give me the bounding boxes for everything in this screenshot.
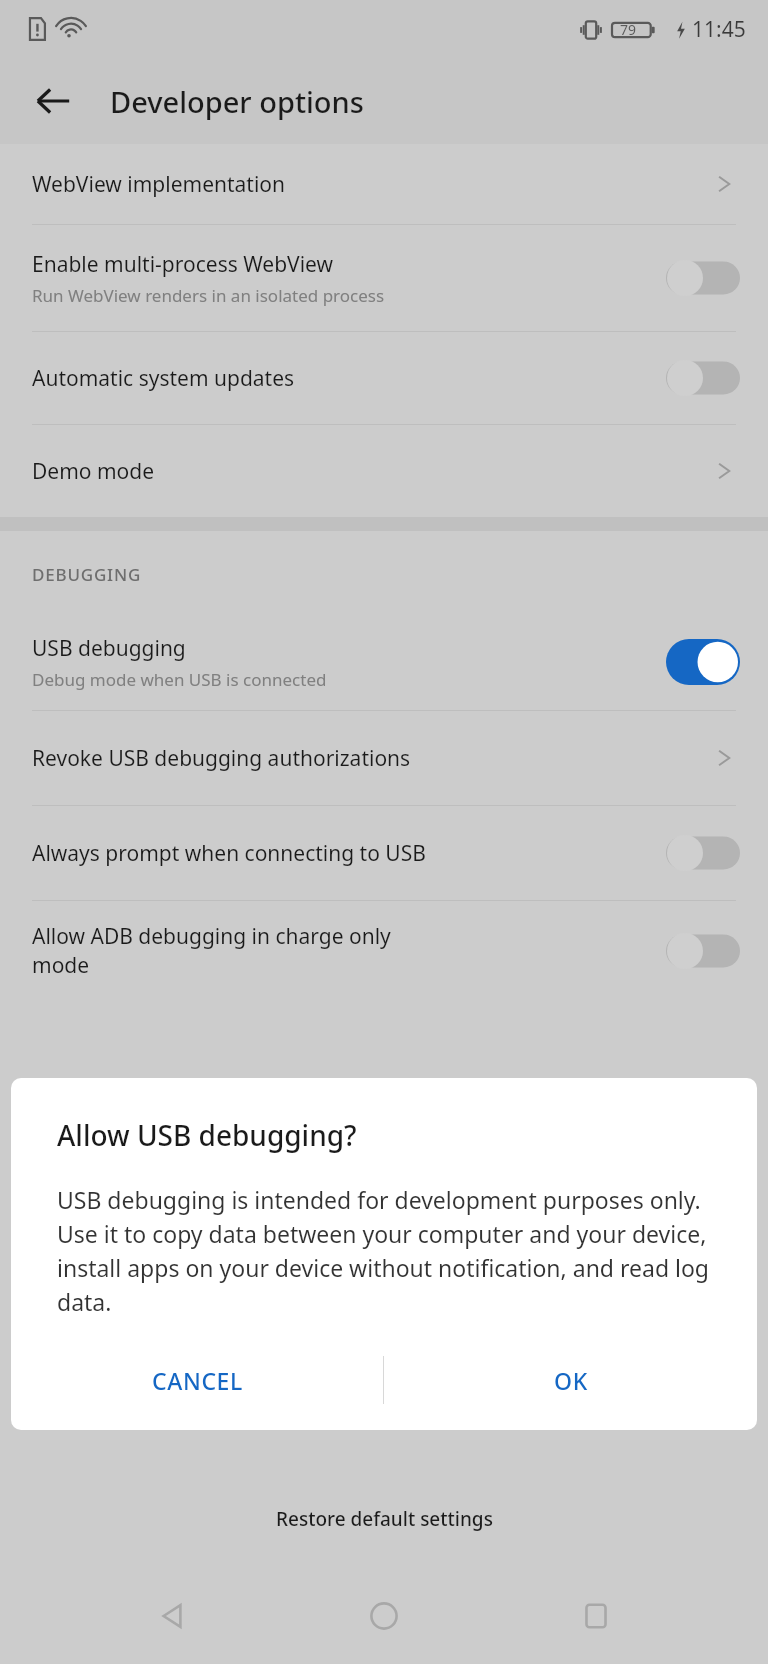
button[interactable]: OK <box>384 1334 757 1426</box>
staticText: WebView implementation <box>32 170 286 199</box>
staticText: Revoke USB debugging authorizations <box>32 744 411 773</box>
button[interactable]: Back <box>22 70 84 132</box>
staticText: Restore default settings <box>276 1506 493 1532</box>
button[interactable]: Always prompt when connecting to USB <box>0 806 768 900</box>
staticText: Demo mode <box>32 457 155 486</box>
staticText: USB debugging is intended for developmen… <box>57 1184 717 1317</box>
button[interactable]: CANCEL <box>11 1334 383 1426</box>
staticText: USB debugging <box>32 634 186 663</box>
button[interactable]: Automatic system updates <box>0 332 768 424</box>
staticText: Automatic system updates <box>32 364 295 393</box>
button[interactable]: Revoke USB debugging authorizations <box>0 711 768 805</box>
button[interactable]: WebView implementation <box>0 144 768 224</box>
button[interactable]: Enable multi-process WebView <box>0 225 768 331</box>
staticText: 11:45 <box>692 15 746 44</box>
staticText: CANCEL <box>152 1365 243 1396</box>
staticText: 79 <box>620 20 637 39</box>
button[interactable]: Home <box>344 1576 424 1656</box>
button[interactable]: USB debugging <box>0 614 768 710</box>
staticText: Allow ADB debugging in charge only mode <box>32 922 391 980</box>
staticText: Always prompt when connecting to USB <box>32 839 426 868</box>
staticText: Allow USB debugging? <box>57 1116 357 1154</box>
staticText: OK <box>554 1365 588 1396</box>
button[interactable]: Demo mode <box>0 425 768 517</box>
staticText: DEBUGGING <box>32 563 142 586</box>
staticText: Enable multi-process WebView <box>32 250 334 279</box>
button[interactable]: Back <box>132 1576 212 1656</box>
staticText: Developer options <box>110 82 364 121</box>
button[interactable]: Recents <box>556 1576 636 1656</box>
staticText: Debug mode when USB is connected <box>32 668 327 691</box>
staticText: Run WebView renders in an isolated proce… <box>32 284 385 307</box>
button[interactable]: Allow ADB debugging in charge only mode <box>0 901 768 1001</box>
